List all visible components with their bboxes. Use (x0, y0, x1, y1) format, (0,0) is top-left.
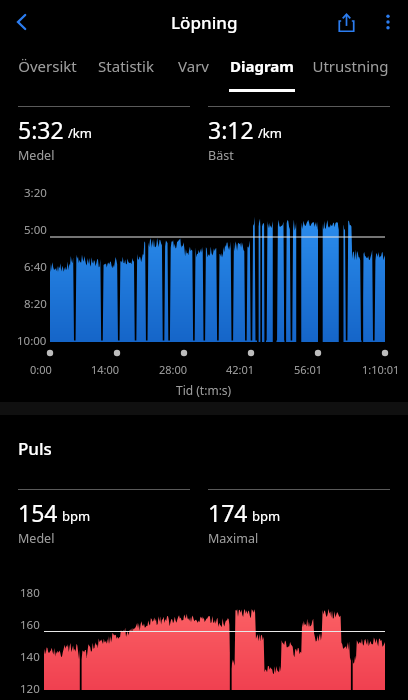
button[interactable]: Back (0, 0, 44, 44)
staticText: 5:00 (24, 222, 47, 238)
staticText: 10:00 (17, 333, 47, 349)
button[interactable]: More options (368, 2, 408, 42)
button[interactable]: Share (324, 0, 368, 44)
staticText: Statistik (98, 56, 154, 76)
button[interactable]: Varv (165, 44, 222, 98)
staticText: 42:01 (226, 362, 255, 377)
staticText: 6:40 (24, 259, 47, 275)
staticText: 0:00 (30, 362, 52, 377)
staticText: 3:12 (208, 114, 254, 145)
staticText: 120 (20, 681, 40, 697)
staticText: bpm (252, 507, 281, 525)
button[interactable]: 5:32 (18, 106, 190, 164)
staticText: 140 (20, 649, 40, 665)
staticText: Utrustning (312, 56, 389, 76)
staticText: 14:00 (91, 362, 120, 377)
staticText: /km (258, 124, 282, 142)
staticText: Tid (t:m:s) (176, 382, 232, 398)
button[interactable]: 154 (18, 489, 190, 547)
staticText: Diagram (230, 56, 294, 76)
button[interactable]: Utrustning (301, 44, 400, 98)
staticText: Medel (18, 147, 55, 164)
staticText: Varv (178, 56, 209, 76)
staticText: Maximal (208, 530, 259, 547)
button[interactable]: Diagram (222, 44, 301, 98)
staticText: 154 (18, 497, 58, 528)
staticText: 5:32 (18, 114, 64, 145)
staticText: 174 (208, 497, 248, 528)
staticText: bpm (62, 507, 91, 525)
staticText: /km (68, 124, 92, 142)
staticText: Medel (18, 530, 55, 547)
staticText: 8:20 (24, 296, 47, 312)
staticText: Löpning (171, 11, 238, 34)
button[interactable]: 174 (208, 489, 390, 547)
staticText: 160 (20, 617, 40, 633)
staticText: Översikt (18, 56, 77, 76)
staticText: Bäst (208, 147, 234, 164)
button[interactable]: Statistik (86, 44, 165, 98)
staticText: 28:00 (159, 362, 188, 377)
staticText: Puls (18, 437, 52, 460)
staticText: 3:20 (24, 185, 47, 201)
staticText: 180 (20, 585, 40, 601)
button[interactable]: Översikt (8, 44, 86, 98)
staticText: 56:01 (294, 362, 323, 377)
staticText: 1:10:01 (362, 362, 400, 377)
button[interactable]: 3:12 (208, 106, 390, 164)
